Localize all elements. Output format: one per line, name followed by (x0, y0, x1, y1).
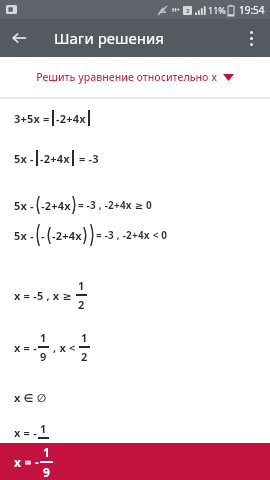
staticText: 5x - (14, 228, 34, 243)
staticText: x = - (14, 425, 37, 440)
staticText: 9 (40, 349, 47, 364)
staticText: Шаги решения (54, 28, 164, 48)
staticText: = -3 (76, 151, 99, 166)
button[interactable]: Back (0, 19, 38, 57)
staticText: 1 (40, 421, 47, 436)
staticText: 2 (81, 349, 88, 364)
button[interactable]: x = - (0, 443, 270, 480)
button[interactable]: More options (232, 19, 270, 57)
staticText: = -3 , -2+4x < 0 (96, 228, 168, 242)
staticText: 2 (78, 297, 85, 312)
staticText: x = -5 , x ≥ (14, 288, 72, 303)
staticText: = -3 , -2+4x ≥ 0 (78, 198, 152, 212)
staticText: 11% (208, 4, 226, 16)
staticText: -2+4x (40, 151, 70, 166)
staticText: x = - (14, 340, 37, 355)
staticText: 5x - (14, 198, 34, 213)
staticText: Решить уравнение относительно x (36, 70, 217, 84)
staticText: 1 (40, 330, 47, 345)
staticText: - (41, 228, 45, 243)
staticText: 19:54 (239, 3, 265, 17)
button[interactable]: Решить уравнение относительно x (0, 57, 270, 97)
staticText: x = - (14, 454, 39, 470)
staticText: 1 (81, 330, 88, 345)
staticText: 1 (43, 444, 51, 460)
staticText: H+ (172, 6, 181, 14)
staticText: 9 (43, 464, 51, 480)
staticText: 3+5x = (14, 111, 50, 126)
staticText: -2+4x (41, 198, 71, 213)
staticText: 2 (186, 7, 190, 15)
staticText: , x < (50, 340, 76, 355)
staticText: -2+4x (52, 228, 82, 243)
staticText: 1 (78, 278, 85, 293)
staticText: 5x - (14, 151, 34, 166)
staticText: -2+4x (56, 111, 86, 126)
staticText: x ∈ ∅ (14, 390, 47, 405)
